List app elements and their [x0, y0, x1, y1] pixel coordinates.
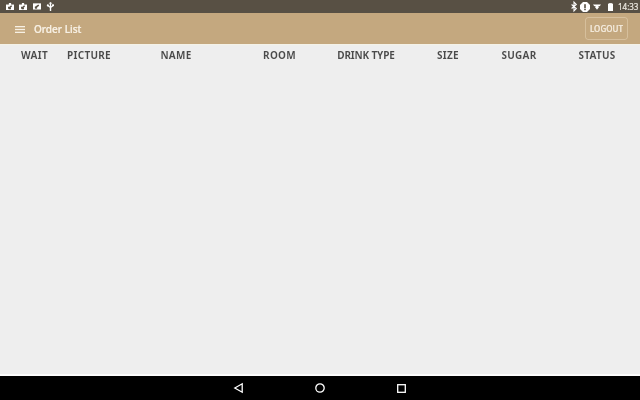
button[interactable]: Home [310, 378, 330, 398]
button[interactable]: Back [229, 378, 249, 398]
button[interactable]: DRINK TYPE [321, 47, 411, 63]
button[interactable]: Open navigation menu [10, 19, 30, 39]
button[interactable]: NAME [131, 47, 221, 63]
button[interactable]: ROOM [234, 47, 324, 63]
button[interactable]: Recent apps [391, 378, 411, 398]
staticText: DRINK TYPE [337, 48, 395, 62]
staticText: ROOM [263, 48, 296, 62]
staticText: SIZE [437, 48, 459, 62]
button[interactable]: LOGOUT [585, 17, 628, 40]
button[interactable]: STATUS [552, 47, 640, 63]
button[interactable]: PICTURE [44, 47, 134, 63]
staticText: SUGAR [501, 48, 537, 62]
button[interactable]: SIZE [403, 47, 493, 63]
staticText: NAME [160, 48, 192, 62]
staticText: Order List [34, 22, 82, 36]
staticText: STATUS [578, 48, 616, 62]
staticText: PICTURE [67, 48, 111, 62]
staticText: WAIT [21, 48, 48, 62]
staticText: LOGOUT [590, 23, 623, 34]
button[interactable]: WAIT [0, 47, 79, 63]
button[interactable]: SUGAR [474, 47, 564, 63]
staticText: 14:33 [618, 1, 639, 12]
